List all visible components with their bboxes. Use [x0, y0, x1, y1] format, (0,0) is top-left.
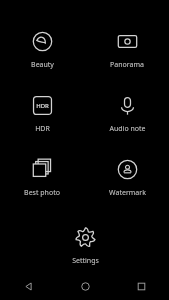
button[interactable]: Back: [0, 272, 57, 300]
staticText: Panorama: [110, 60, 144, 70]
staticText: Settings: [72, 256, 99, 266]
staticText: HDR: [36, 102, 49, 110]
button[interactable]: Audio note: [85, 90, 169, 138]
button[interactable]: Home: [57, 272, 113, 300]
button[interactable]: Beauty: [0, 26, 84, 74]
staticText: Best photo: [24, 188, 60, 198]
button[interactable]: Best photo: [0, 154, 84, 202]
staticText: Watermark: [109, 188, 146, 198]
button[interactable]: HDR: [0, 90, 84, 138]
staticText: Audio note: [109, 124, 146, 134]
button[interactable]: Watermark: [85, 154, 169, 202]
button[interactable]: Settings: [43, 222, 127, 270]
other: Watermark: [116, 158, 139, 181]
other: Best photo: [31, 158, 54, 181]
other: Panorama: [116, 30, 139, 53]
button[interactable]: Recent apps: [113, 272, 169, 300]
other: Audio note: [116, 94, 139, 117]
other: HDR: [31, 94, 54, 117]
other: Beauty: [31, 30, 54, 53]
staticText: HDR: [35, 124, 50, 134]
staticText: Beauty: [31, 60, 54, 70]
button[interactable]: Panorama: [85, 26, 169, 74]
other: Settings: [74, 226, 97, 249]
